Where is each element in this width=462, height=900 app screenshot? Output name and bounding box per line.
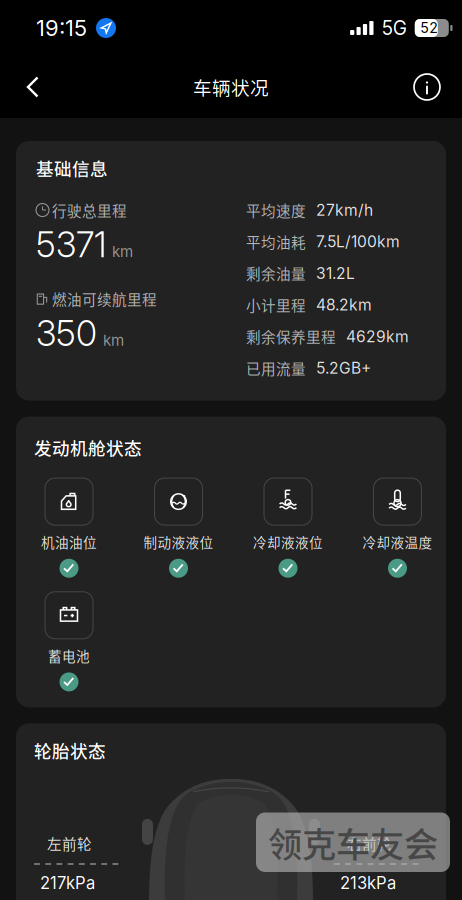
staticText: 行驶总里程 xyxy=(52,199,127,221)
staticText: 4629km xyxy=(346,327,409,346)
staticText: 剩余保养里程 xyxy=(246,326,336,347)
staticText: 基础信息 xyxy=(36,155,108,180)
staticText: 燃油可续航里程 xyxy=(52,288,157,309)
staticText: 5.2GB+ xyxy=(316,359,371,377)
staticText: 左前轮 xyxy=(47,833,92,854)
staticText: 31.2L xyxy=(316,264,355,283)
button[interactable]: 冷却液温度 xyxy=(362,478,432,578)
staticText: 48.2km xyxy=(316,295,372,314)
staticText: 27km/h xyxy=(316,201,373,219)
staticText: 机油油位 xyxy=(41,532,97,552)
staticText: 平均速度 xyxy=(246,199,306,221)
staticText: 轮胎状态 xyxy=(34,737,106,763)
staticText: 小计里程 xyxy=(246,294,306,315)
staticText: 52 xyxy=(420,19,438,36)
staticText: km xyxy=(112,242,133,260)
button[interactable]: Back xyxy=(10,64,56,110)
staticText: 制动液液位 xyxy=(143,532,213,552)
button[interactable]: 蓄电池 xyxy=(34,592,104,691)
staticText: 350 xyxy=(36,312,97,354)
button[interactable]: 制动液液位 xyxy=(143,478,213,578)
staticText: 平均油耗 xyxy=(246,231,306,252)
staticText: km xyxy=(103,331,124,349)
staticText: 剩余油量 xyxy=(246,263,306,284)
staticText: 217kPa xyxy=(40,873,95,893)
staticText: 213kPa xyxy=(340,873,396,893)
staticText: 蓄电池 xyxy=(48,646,90,665)
staticText: 领克车友会 xyxy=(268,817,438,867)
button[interactable]: 冷却液液位 xyxy=(253,478,323,578)
staticText: 5371 xyxy=(36,224,106,266)
staticText: 7.5L/100km xyxy=(316,232,400,251)
staticText: 已用流量 xyxy=(246,357,306,379)
staticText: 冷却液液位 xyxy=(253,532,323,552)
staticText: 右前轮 xyxy=(347,833,392,854)
staticText: 发动机舱状态 xyxy=(34,435,142,460)
button[interactable]: Info xyxy=(404,64,450,110)
button[interactable]: 机油油位 xyxy=(34,478,104,578)
staticText: 5G xyxy=(382,16,407,39)
staticText: 车辆状况 xyxy=(193,73,269,100)
staticText: 冷却液温度 xyxy=(362,532,432,552)
staticText: 19:15 xyxy=(36,15,87,41)
